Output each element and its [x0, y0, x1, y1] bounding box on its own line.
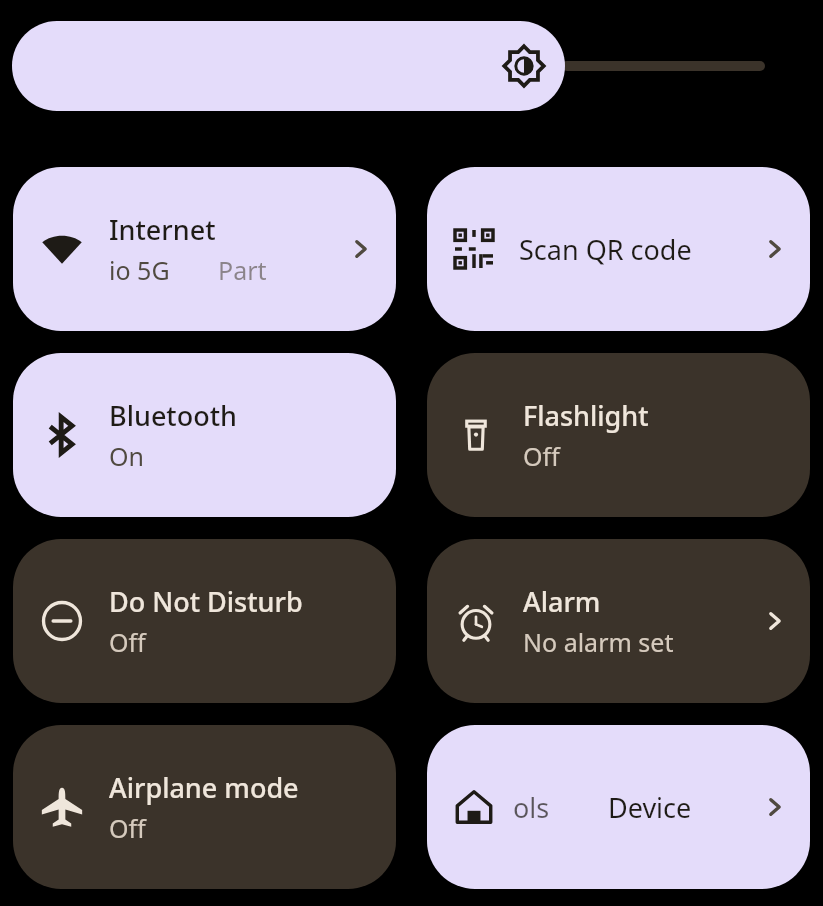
button[interactable]: Device controls: [427, 725, 810, 889]
staticText: Do Not Disturb: [109, 583, 303, 620]
staticText: Off: [109, 625, 146, 659]
button[interactable]: Do Not Disturb: [13, 539, 396, 703]
staticText: Off: [109, 811, 146, 845]
staticText: Part: [218, 253, 267, 287]
staticText: Flashlight: [523, 397, 649, 434]
button[interactable]: Airplane mode: [13, 725, 396, 889]
staticText: Airplane mode: [109, 769, 299, 806]
staticText: io 5G: [109, 253, 170, 287]
staticText: ols: [513, 789, 550, 826]
button[interactable]: Alarm: [427, 539, 810, 703]
staticText: Bluetooth: [109, 397, 237, 434]
staticText: Internet: [109, 211, 216, 248]
button[interactable]: Scan QR code: [427, 167, 810, 331]
staticText: No alarm set: [523, 625, 674, 659]
button[interactable]: Internet: [13, 167, 396, 331]
button[interactable]: Brightness: [12, 21, 811, 111]
staticText: Device: [608, 789, 762, 826]
staticText: Alarm: [523, 583, 601, 620]
staticText: On: [109, 439, 144, 473]
staticText: Off: [523, 439, 560, 473]
staticText: Scan QR code: [519, 231, 762, 268]
button[interactable]: Flashlight: [427, 353, 810, 517]
button[interactable]: Bluetooth: [13, 353, 396, 517]
